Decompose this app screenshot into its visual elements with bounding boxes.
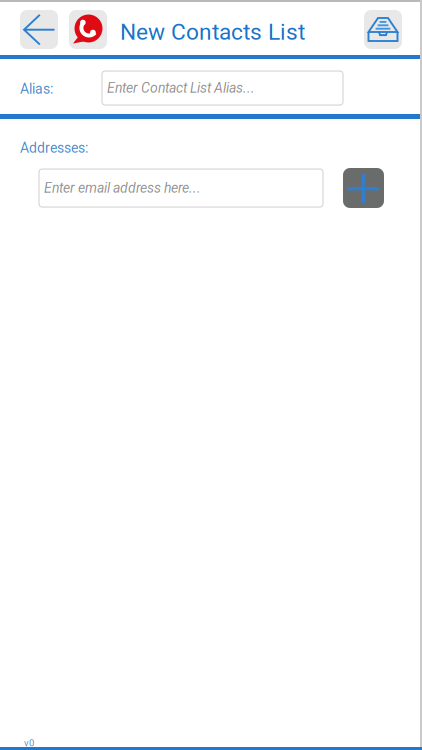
staticText: Enter email address here... [44, 180, 201, 196]
staticText: Enter Contact List Alias... [107, 80, 255, 96]
staticText: Addresses: [20, 140, 88, 156]
staticText: New Contacts List [120, 19, 305, 45]
button[interactable]: Back [20, 10, 58, 49]
staticText: Alias: [20, 81, 53, 97]
button[interactable]: Archive [364, 10, 402, 49]
button[interactable]: Add address [343, 168, 384, 208]
button[interactable]: WhatsApp [69, 10, 107, 49]
staticText: v0 [24, 737, 34, 748]
